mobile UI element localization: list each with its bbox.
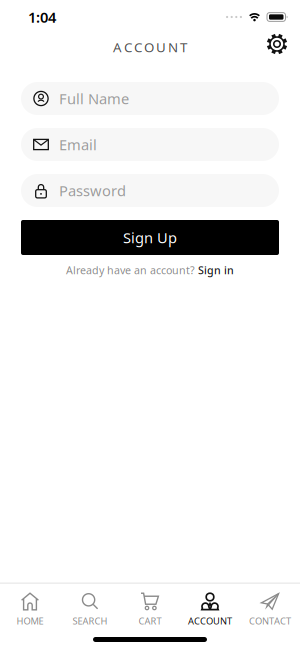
staticText: HOME — [16, 615, 43, 627]
button[interactable]: Sign in — [198, 263, 234, 277]
staticText: Sign Up — [123, 228, 177, 247]
button[interactable]: ACCOUNT — [180, 592, 240, 627]
button[interactable]: Sign Up — [21, 220, 279, 255]
button[interactable]: HOME — [0, 592, 60, 627]
staticText: Sign in — [198, 263, 234, 277]
button[interactable]: CART — [120, 592, 180, 627]
button[interactable]: Settings — [266, 33, 288, 55]
staticText: ACCOUNT — [188, 615, 232, 627]
staticText: Password — [59, 181, 126, 200]
button[interactable]: CONTACT — [240, 592, 300, 627]
staticText: Email — [59, 135, 97, 154]
staticText: A C C O U N T — [113, 38, 187, 56]
staticText: Full Name — [59, 89, 129, 108]
staticText: SEARCH — [72, 615, 107, 627]
button[interactable]: SEARCH — [60, 592, 120, 627]
staticText: Already have an account? — [66, 263, 195, 277]
staticText: CART — [138, 615, 161, 627]
staticText: 1:04 — [28, 7, 56, 27]
staticText: CONTACT — [249, 615, 291, 627]
